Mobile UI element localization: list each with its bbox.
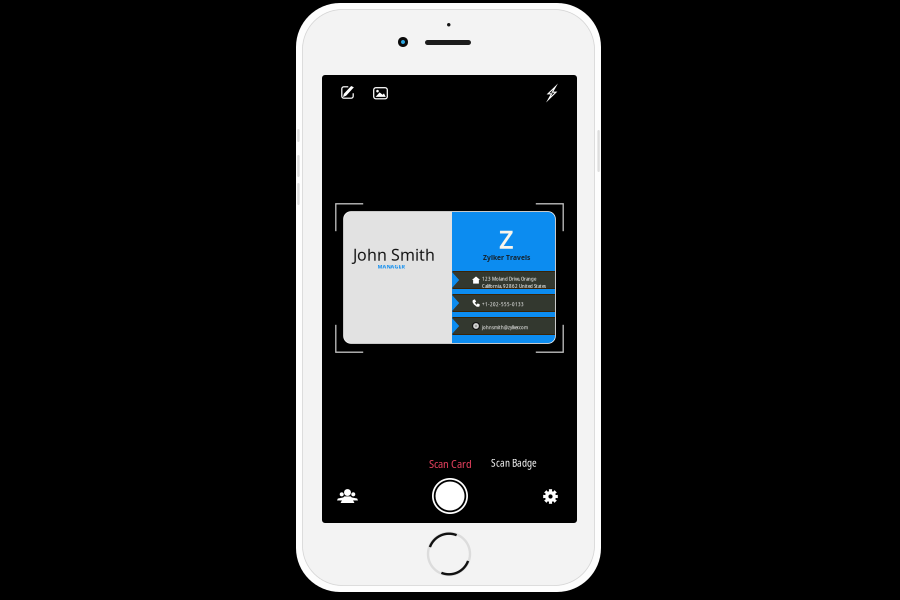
staticText: John Smith <box>353 244 435 265</box>
button[interactable]: Contacts <box>333 481 363 511</box>
staticText: Z <box>499 222 514 256</box>
button[interactable]: Capture <box>432 478 468 514</box>
staticText: 123 Moland Drive, Orange <box>482 275 536 282</box>
staticText: johnsmith@zylker.com <box>482 323 528 331</box>
button[interactable]: Settings <box>536 481 566 511</box>
button[interactable]: Flash <box>540 81 564 105</box>
staticText: Scan Card <box>429 456 472 471</box>
staticText: Scan Badge <box>491 456 537 470</box>
button[interactable]: Photo Library <box>369 81 393 105</box>
button[interactable]: Scan Badge <box>491 456 537 470</box>
button[interactable]: Compose <box>336 81 360 105</box>
staticText: +1-202-555-0133 <box>482 300 524 308</box>
staticText: MANAGER <box>377 263 404 270</box>
staticText: Zylker Travels <box>483 253 530 262</box>
button[interactable]: Scan Card <box>429 456 472 471</box>
staticText: California, 92862 United States <box>482 282 546 290</box>
